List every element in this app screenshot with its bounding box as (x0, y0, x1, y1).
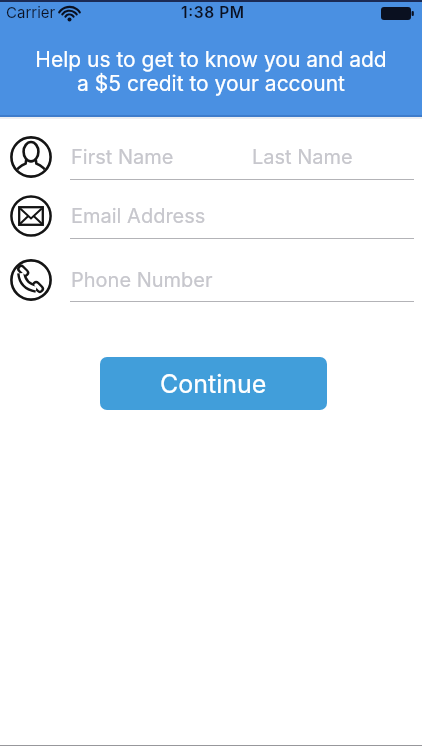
button[interactable]: Phone Number (70, 259, 414, 301)
staticText: First Name (71, 145, 174, 169)
button[interactable]: Continue (100, 357, 327, 410)
staticText: Last Name (252, 145, 353, 169)
staticText: Email Address (71, 204, 206, 228)
staticText: Continue (160, 369, 267, 399)
button[interactable]: Email Address (70, 195, 414, 237)
staticText: Carrier (6, 3, 56, 21)
staticText: 1:38 PM (181, 3, 245, 22)
button[interactable]: Last Name (246, 136, 414, 178)
staticText: Phone Number (71, 268, 213, 292)
staticText: Help us to get to know you and add a $5 … (35, 47, 387, 96)
button[interactable]: First Name (70, 136, 242, 178)
